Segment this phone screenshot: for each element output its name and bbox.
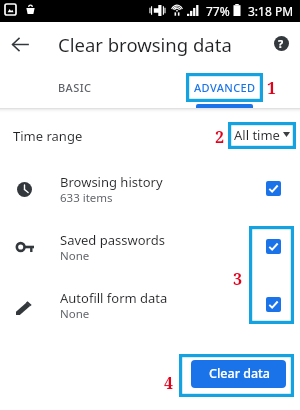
button[interactable] [0,216,300,268]
staticText: Time range [13,127,83,145]
staticText: 2 [215,126,225,148]
staticText: All time [234,126,280,142]
staticText: Saved passwords [60,231,165,249]
button[interactable] [0,114,300,156]
button[interactable]: Checked [266,239,281,254]
staticText: Clear browsing data [58,32,232,57]
button[interactable]: Help [268,30,294,56]
staticText: 77% [206,3,230,19]
staticText: 3 [233,268,243,290]
staticText: None [60,306,90,322]
staticText: Browsing history [60,173,163,191]
button[interactable] [0,274,300,326]
button[interactable]: BASIC [30,68,120,106]
staticText: Autofill form data [60,289,168,307]
button[interactable]: Checked [266,297,281,312]
button[interactable]: Clear data [191,360,286,388]
button[interactable]: Checked [266,181,281,196]
staticText: 3:18 PM [248,3,294,19]
staticText: 1 [267,77,277,99]
staticText: 633 items [60,190,113,206]
button[interactable]: Back [6,30,34,58]
button[interactable]: ADVANCED [180,68,270,106]
staticText: Clear data [209,365,271,382]
button[interactable] [0,158,300,210]
button[interactable]: All time [234,126,290,142]
staticText: ? [278,36,284,51]
staticText: None [60,248,90,264]
staticText: BASIC [58,80,92,95]
staticText: 4 [164,372,174,394]
staticText: ADVANCED [194,80,256,95]
